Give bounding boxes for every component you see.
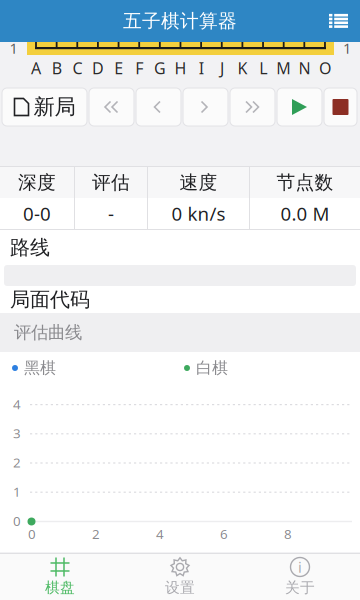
button[interactable]: 开始 — [277, 88, 322, 126]
staticText: I — [199, 57, 204, 79]
button[interactable]: 上一步 — [136, 88, 181, 126]
staticText: 0.0 M — [280, 201, 329, 226]
button[interactable]: 棋盘 — [0, 554, 120, 600]
staticText: C — [72, 57, 82, 79]
staticText: 0 — [13, 512, 21, 530]
button[interactable]: 下一步 — [183, 88, 228, 126]
button[interactable]: 最后 — [230, 88, 275, 126]
staticText: E — [114, 57, 123, 79]
staticText: 局面代码 — [10, 287, 90, 312]
staticText: H — [175, 57, 187, 79]
staticText: 评估 — [92, 171, 130, 194]
staticText: O — [319, 57, 331, 79]
button[interactable]: 设置 — [120, 554, 240, 600]
staticText: 3 — [13, 424, 21, 442]
staticText: 新局 — [33, 94, 75, 120]
staticText: 1 — [9, 38, 17, 58]
staticText: 评估曲线 — [14, 322, 82, 343]
button[interactable]: 新局 — [2, 88, 87, 126]
staticText: 0 — [28, 525, 36, 543]
button[interactable]: i — [240, 554, 360, 600]
button[interactable]: 停止 — [324, 88, 357, 126]
staticText: i — [298, 557, 302, 577]
staticText: N — [298, 57, 310, 79]
button[interactable]: 最前 — [89, 88, 134, 126]
button[interactable]: 菜单 — [329, 0, 360, 42]
staticText: 棋盘 — [45, 578, 75, 596]
staticText: 2 — [92, 525, 100, 543]
staticText: J — [220, 57, 224, 79]
staticText: A — [31, 57, 41, 79]
staticText: G — [154, 57, 166, 79]
staticText: 4 — [13, 395, 21, 413]
staticText: F — [135, 57, 143, 79]
staticText: 1 — [13, 483, 21, 500]
staticText: B — [52, 57, 62, 79]
staticText: L — [259, 57, 267, 79]
staticText: D — [92, 57, 104, 79]
staticText: 关于 — [285, 578, 315, 596]
staticText: 路线 — [10, 235, 50, 260]
staticText: 0-0 — [23, 201, 51, 226]
staticText: 6 — [220, 525, 228, 543]
staticText: 白棋 — [196, 358, 228, 378]
staticText: 设置 — [165, 578, 195, 596]
staticText: 8 — [284, 525, 292, 543]
staticText: 速度 — [179, 171, 217, 194]
staticText: 深度 — [18, 171, 56, 194]
staticText: 2 — [13, 453, 21, 471]
staticText: 0 kn/s — [171, 201, 225, 226]
staticText: 4 — [156, 525, 164, 543]
staticText: K — [237, 57, 247, 79]
staticText: 1 — [343, 38, 351, 58]
staticText: - — [108, 201, 114, 226]
staticText: 节点数 — [276, 171, 333, 194]
staticText: M — [276, 57, 291, 79]
staticText: 五子棋计算器 — [123, 9, 237, 32]
staticText: 黑棋 — [24, 358, 56, 378]
